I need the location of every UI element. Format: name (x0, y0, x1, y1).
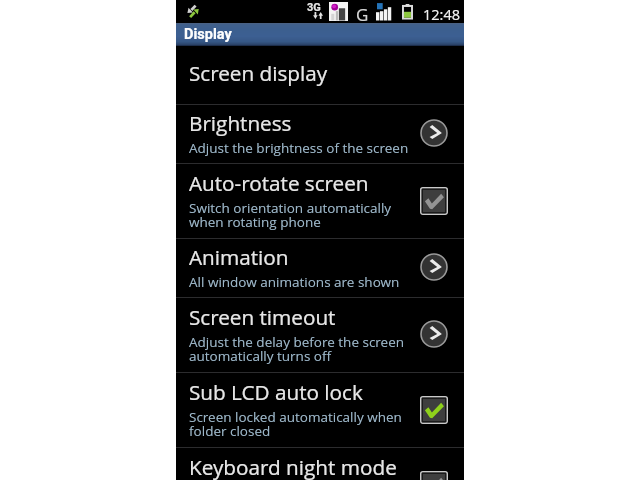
button[interactable]: Display (176, 23, 464, 46)
button[interactable]: Disabled (420, 471, 448, 480)
button[interactable]: Sub LCD auto lock (176, 373, 464, 447)
staticText: Screen display (189, 59, 328, 87)
staticText: Sub LCD auto lock (189, 378, 363, 406)
staticText: 3G (307, 1, 321, 14)
staticText: 12:48 (423, 5, 461, 25)
button[interactable]: Enabled (420, 396, 448, 424)
staticText: Auto-rotate screen (189, 169, 369, 197)
staticText: Adjust the delay before the screen autom… (189, 333, 405, 365)
staticText: Adjust the brightness of the screen (189, 139, 409, 157)
staticText: Screen timeout (189, 303, 336, 331)
staticText: Animation (189, 243, 289, 271)
button[interactable]: Brightness (176, 105, 464, 163)
button[interactable]: Disabled (420, 187, 448, 215)
button[interactable]: Auto-rotate screen (176, 164, 464, 238)
staticText: Screen locked automatically when folder … (189, 408, 402, 440)
button[interactable]: Screen display (176, 46, 464, 104)
staticText: Display (184, 26, 232, 43)
staticText: All window animations are shown (189, 273, 400, 291)
button[interactable]: Open (420, 253, 448, 281)
button[interactable]: Screen timeout (176, 298, 464, 372)
staticText: Keyboard night mode (189, 453, 397, 480)
button[interactable]: Open (420, 320, 448, 348)
staticText: Brightness (189, 109, 292, 137)
staticText: Switch orientation automatically when ro… (189, 199, 392, 231)
button[interactable]: Keyboard night mode (176, 448, 464, 480)
staticText: G (356, 3, 369, 26)
button[interactable]: Open (420, 119, 448, 147)
button[interactable]: Animation (176, 239, 464, 297)
